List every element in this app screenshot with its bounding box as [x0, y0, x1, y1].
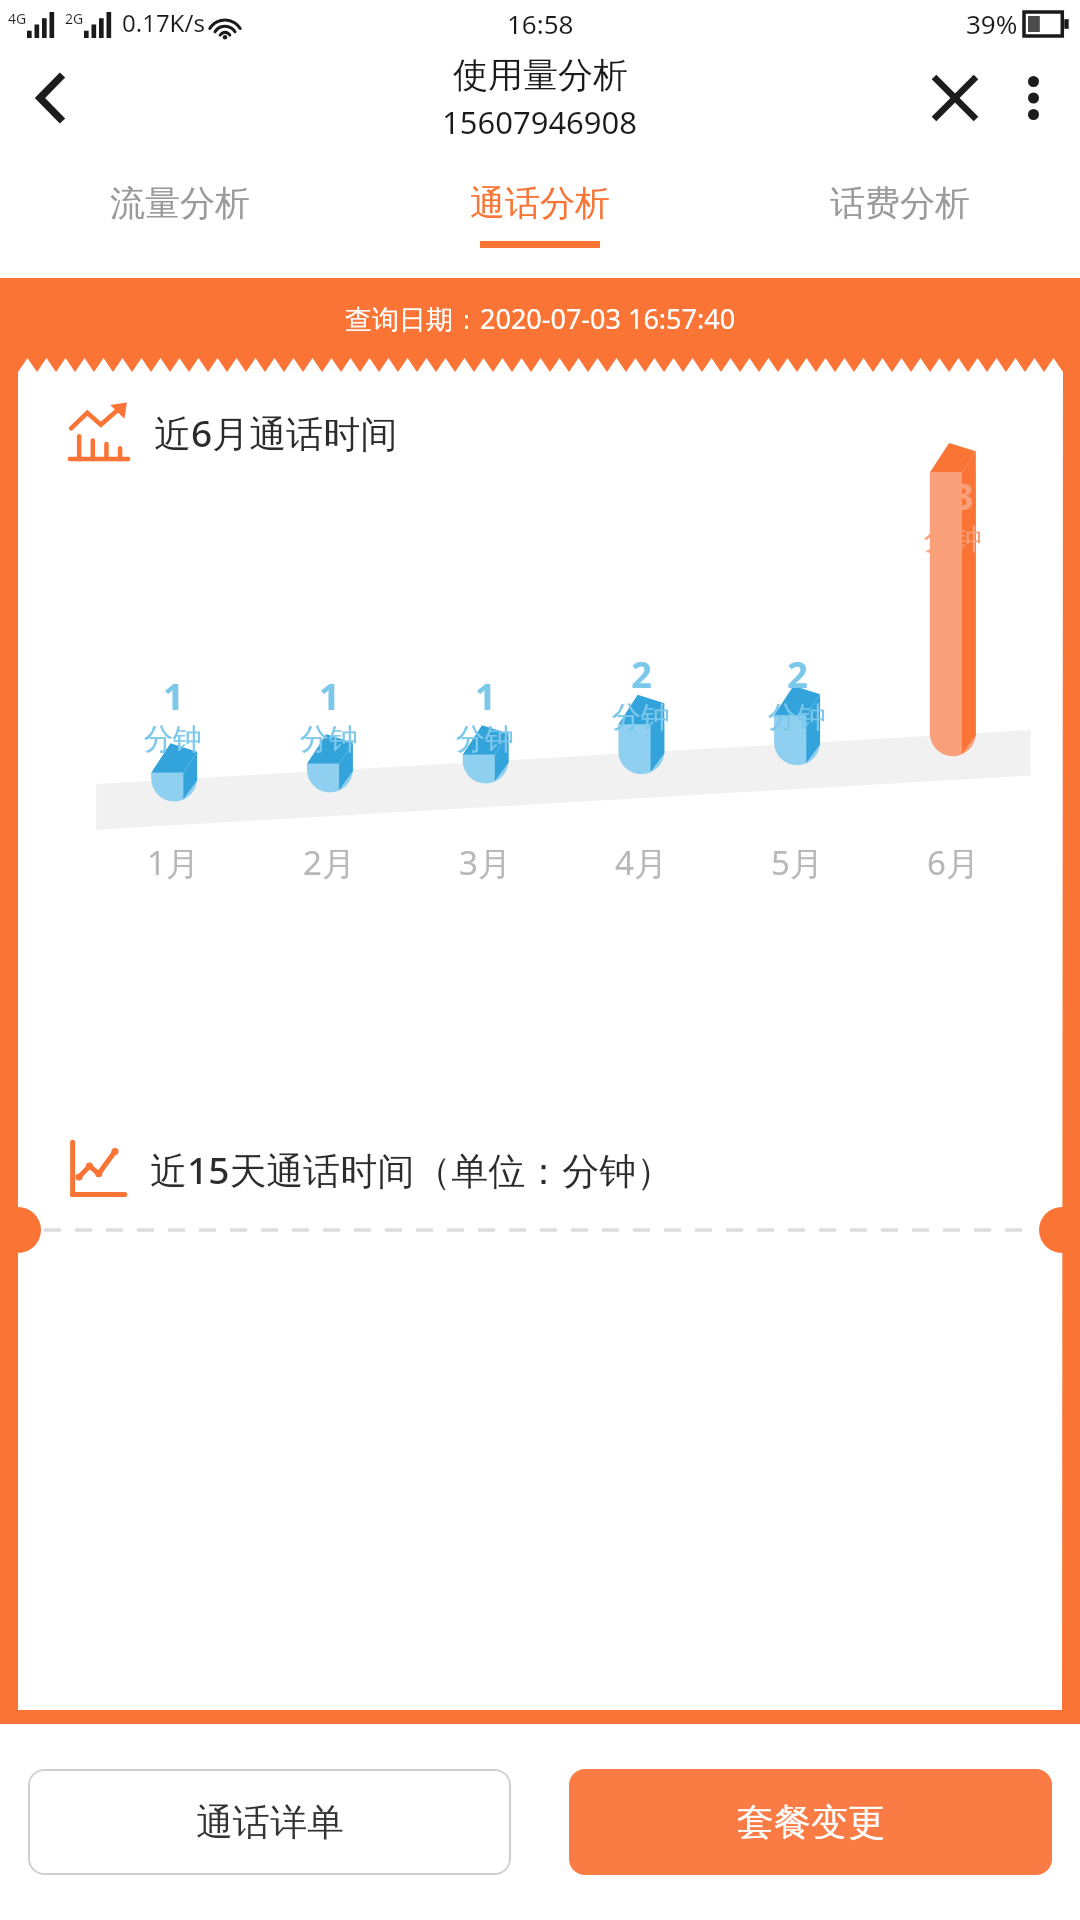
staticText: 分钟	[924, 521, 982, 558]
staticText: 16:58	[507, 6, 574, 41]
staticText: 2	[631, 650, 652, 699]
staticText: 2	[787, 650, 808, 699]
staticText: 话费分析	[830, 181, 970, 225]
button[interactable]: 通话详单	[28, 1769, 511, 1875]
button[interactable]: 话费分析	[720, 150, 1080, 278]
staticText: 3月	[459, 840, 511, 885]
staticText: 6月	[927, 840, 979, 885]
button[interactable]: 流量分析	[0, 150, 360, 278]
staticText: 4G	[8, 9, 27, 28]
button[interactable]: Back	[14, 60, 90, 136]
staticText: 13	[932, 472, 974, 521]
staticText: 分钟	[300, 721, 358, 758]
staticText: 查询日期：2020-07-03 16:57:40	[345, 300, 736, 337]
staticText: 近6月通话时间	[154, 407, 398, 458]
staticText: 5月	[771, 840, 823, 885]
staticText: 分钟	[768, 699, 826, 736]
staticText: 2G	[65, 9, 84, 28]
button[interactable]: 通话分析	[360, 150, 720, 278]
staticText: 1月	[147, 840, 199, 885]
staticText: 近15天通话时间（单位：分钟）	[150, 1144, 674, 1195]
staticText: 0.17K/s	[122, 6, 205, 39]
staticText: 通话详单	[196, 1799, 344, 1846]
staticText: 通话分析	[470, 181, 610, 225]
staticText: 分钟	[612, 699, 670, 736]
staticText: 分钟	[456, 721, 514, 758]
staticText: 1	[475, 672, 496, 721]
staticText: 4月	[615, 840, 667, 885]
staticText: 2月	[303, 840, 355, 885]
staticText: 分钟	[144, 721, 202, 758]
staticText: 套餐变更	[737, 1799, 885, 1846]
staticText: 使用量分析	[453, 53, 628, 97]
button[interactable]: Close	[918, 61, 992, 135]
staticText: 15607946908	[442, 101, 638, 143]
staticText: 1	[163, 672, 184, 721]
staticText: 流量分析	[110, 181, 250, 225]
staticText: 39%	[966, 6, 1018, 41]
button[interactable]: 套餐变更	[569, 1769, 1052, 1875]
button[interactable]: More options	[1002, 67, 1064, 129]
staticText: 1	[319, 672, 340, 721]
